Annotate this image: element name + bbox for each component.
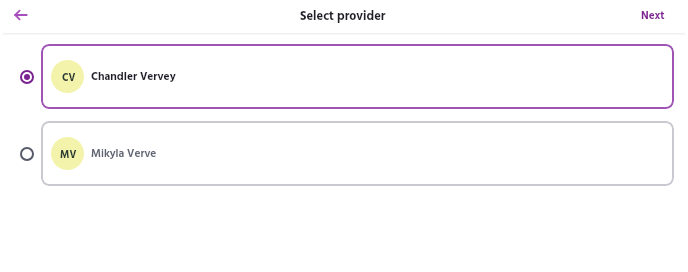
button[interactable]: Next (641, 7, 665, 25)
button[interactable]: Back (9, 3, 33, 27)
staticText: Chandler Vervey (91, 68, 176, 86)
button[interactable]: CV (0, 44, 688, 109)
staticText: MV (60, 147, 77, 164)
staticText: Select provider (300, 7, 386, 27)
staticText: CV (62, 70, 76, 87)
staticText: Next (641, 7, 665, 25)
button[interactable]: MV (0, 121, 688, 186)
staticText: Mikyla Verve (91, 145, 157, 163)
